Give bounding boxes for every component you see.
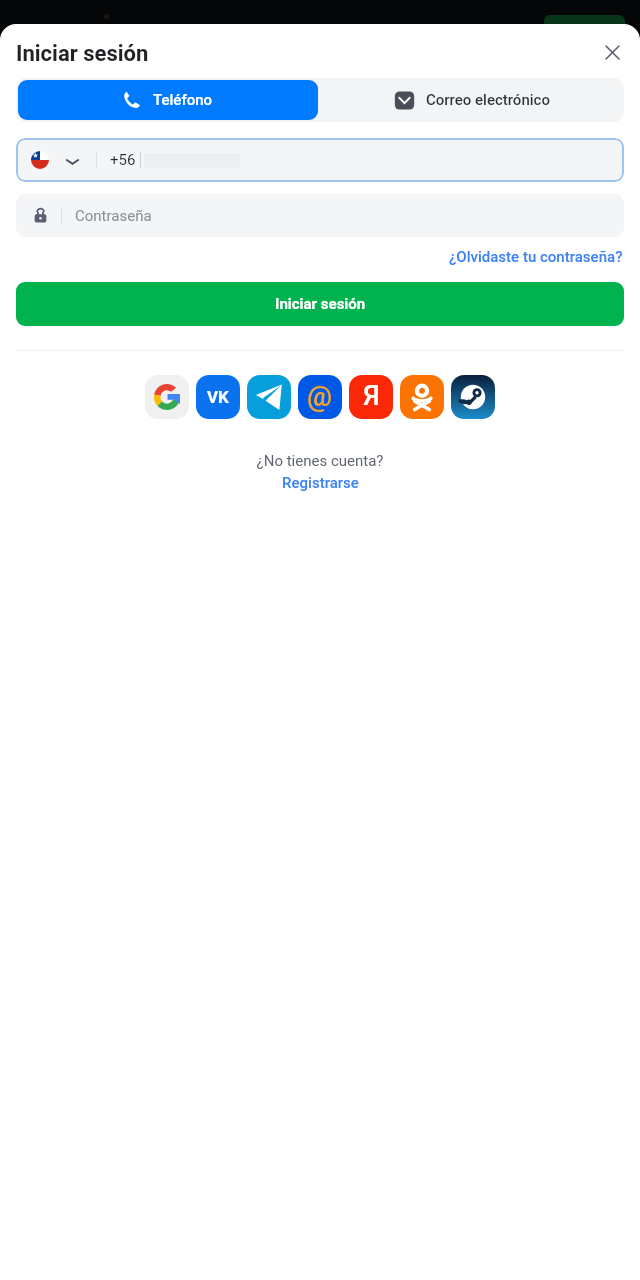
button[interactable]: Correo electrónico <box>320 78 624 122</box>
staticText: VK <box>207 387 229 407</box>
button[interactable]: Google <box>145 375 189 419</box>
button[interactable]: Yandex <box>349 375 393 419</box>
button[interactable]: VK <box>196 375 240 419</box>
staticText: +56 <box>110 151 136 169</box>
button[interactable]: Iniciar sesión <box>16 282 624 326</box>
button[interactable]: +56 <box>16 138 624 182</box>
button[interactable]: Telegram <box>247 375 291 419</box>
button[interactable]: Mail.ru <box>298 375 342 419</box>
staticText: ¿Olvidaste tu contraseña? <box>449 248 623 266</box>
button[interactable]: Teléfono <box>18 80 318 120</box>
button[interactable]: Cerrar <box>596 36 629 69</box>
staticText: Contraseña <box>75 207 152 225</box>
staticText: @ <box>307 380 333 413</box>
staticText: Я <box>363 380 380 412</box>
button[interactable]: Contraseña <box>16 194 624 237</box>
button[interactable]: ¿Olvidaste tu contraseña? <box>437 244 635 270</box>
button[interactable]: Steam <box>451 375 495 419</box>
staticText: Iniciar sesión <box>16 41 149 67</box>
staticText: Correo electrónico <box>426 91 550 109</box>
button[interactable]: Odnoklassniki <box>400 375 444 419</box>
staticText: Teléfono <box>153 91 213 109</box>
staticText: ¿No tienes cuenta? <box>0 452 640 470</box>
button[interactable]: Registrarse <box>276 472 365 494</box>
staticText: Iniciar sesión <box>275 295 366 313</box>
